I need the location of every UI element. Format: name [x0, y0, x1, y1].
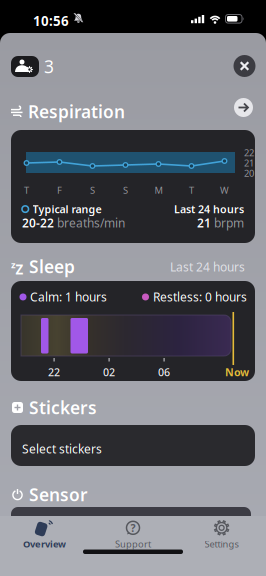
staticText: Last 24 hours [170, 259, 245, 275]
staticText: Sensor [29, 483, 88, 506]
staticText: M [154, 184, 162, 196]
staticText: ? [130, 521, 135, 535]
staticText: Last 24 hours [174, 202, 244, 216]
staticText: S [123, 184, 128, 196]
button[interactable]: Close [233, 55, 255, 77]
staticText: 3 [44, 55, 54, 78]
staticText: F [57, 184, 62, 196]
staticText: breaths/min [57, 215, 125, 231]
button[interactable]: Profiles [11, 56, 39, 77]
button[interactable]: Overview [0, 520, 89, 550]
staticText: brpm [214, 215, 244, 231]
staticText: 21 [197, 215, 214, 231]
staticText: Restless: 0 hours [153, 289, 247, 305]
staticText: Now [225, 365, 249, 379]
staticText: Typical range [32, 202, 101, 216]
staticText: 20 [244, 167, 254, 179]
staticText: Respiration [28, 100, 125, 123]
staticText: T [24, 184, 29, 196]
staticText: Overview [23, 538, 66, 550]
staticText: 06 [158, 365, 170, 379]
staticText: 02 [103, 365, 115, 379]
staticText: Select stickers [22, 441, 102, 457]
button[interactable]: Open Respiration [234, 98, 253, 117]
staticText: W [220, 184, 229, 196]
staticText: Z [15, 260, 23, 278]
button[interactable]: ? [89, 520, 177, 550]
button[interactable]: Select stickers [11, 425, 255, 466]
staticText: 22 [48, 365, 60, 379]
staticText: Sleep [29, 255, 75, 278]
staticText: T [189, 184, 194, 196]
staticText: Settings [205, 538, 239, 550]
staticText: S [90, 184, 95, 196]
staticText: Calm: 1 hours [30, 289, 107, 305]
button[interactable]: Settings [177, 520, 266, 550]
staticText: 22 [244, 146, 254, 159]
staticText: Stickers [29, 396, 97, 419]
staticText: 20-22 [22, 215, 57, 231]
staticText: 21 [244, 157, 254, 169]
staticText: z [11, 258, 16, 271]
staticText: Support [115, 538, 151, 550]
staticText: 10:56 [33, 12, 69, 30]
